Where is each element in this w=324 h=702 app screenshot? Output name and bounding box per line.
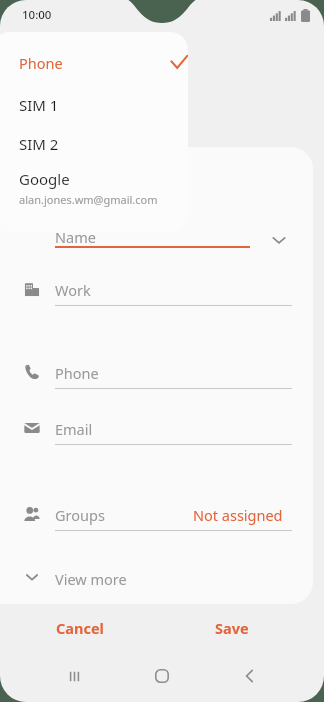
button[interactable]: Save — [192, 613, 272, 643]
button[interactable]: SIM 1 — [0, 92, 188, 118]
button[interactable]: SIM 2 — [0, 131, 188, 157]
staticText: Cancel — [56, 618, 104, 638]
button[interactable]: Email — [0, 419, 313, 459]
staticText: Name — [55, 227, 96, 247]
button[interactable]: Cancel — [40, 613, 120, 643]
staticText: Groups — [55, 505, 105, 525]
button[interactable]: Home — [142, 662, 182, 690]
staticText: View more — [55, 569, 127, 589]
button[interactable]: Google — [0, 169, 188, 207]
button[interactable]: View more — [0, 567, 313, 601]
staticText: Phone — [55, 363, 99, 383]
staticText: alan.jones.wm@gmail.com — [19, 192, 158, 207]
staticText: SIM 1 — [19, 95, 59, 115]
button[interactable]: Phone — [0, 363, 313, 403]
staticText: Email — [55, 419, 93, 439]
staticText: SIM 2 — [19, 134, 59, 154]
staticText: Google — [19, 169, 70, 189]
staticText: Save — [215, 618, 249, 638]
staticText: 10:00 — [22, 7, 52, 23]
staticText: Not assigned — [193, 505, 283, 525]
button[interactable]: Name — [0, 227, 313, 265]
button[interactable]: Expand name fields — [268, 229, 290, 251]
button[interactable]: Recent apps — [54, 662, 94, 690]
button[interactable]: Work — [0, 280, 313, 320]
staticText: Work — [55, 280, 91, 300]
button[interactable]: Groups — [0, 505, 313, 545]
staticText: Phone — [19, 53, 63, 73]
button[interactable]: Phone — [0, 46, 188, 80]
button[interactable]: Back — [230, 662, 270, 690]
